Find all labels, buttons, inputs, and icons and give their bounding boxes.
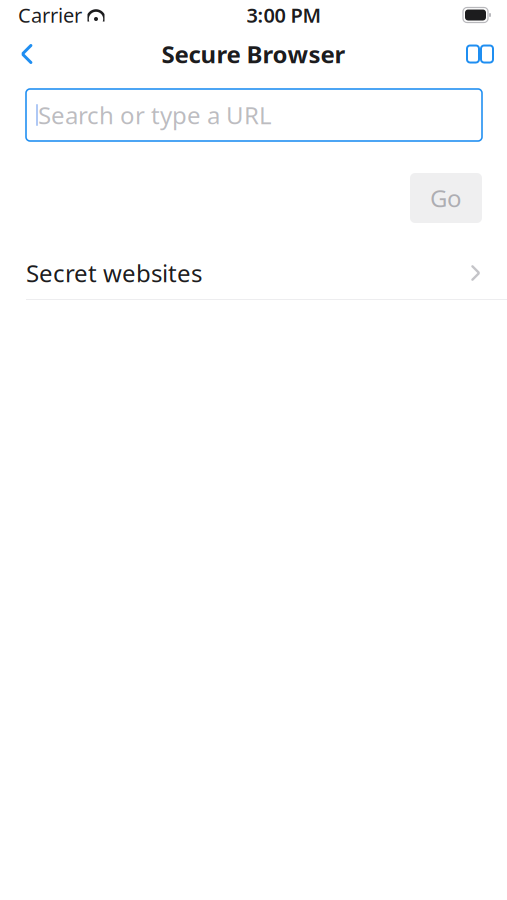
staticText: 3:00 PM bbox=[246, 2, 321, 28]
staticText: Secret websites bbox=[26, 257, 202, 289]
button[interactable]: Bookmarks bbox=[453, 32, 507, 76]
staticText: Search or type a URL bbox=[38, 99, 272, 131]
staticText: Secure Browser bbox=[161, 38, 345, 70]
button[interactable]: Back bbox=[0, 32, 54, 76]
button[interactable]: Secret websites bbox=[0, 247, 507, 299]
button[interactable]: Go bbox=[410, 173, 482, 223]
staticText: Go bbox=[430, 182, 462, 214]
staticText: Carrier bbox=[18, 2, 82, 28]
